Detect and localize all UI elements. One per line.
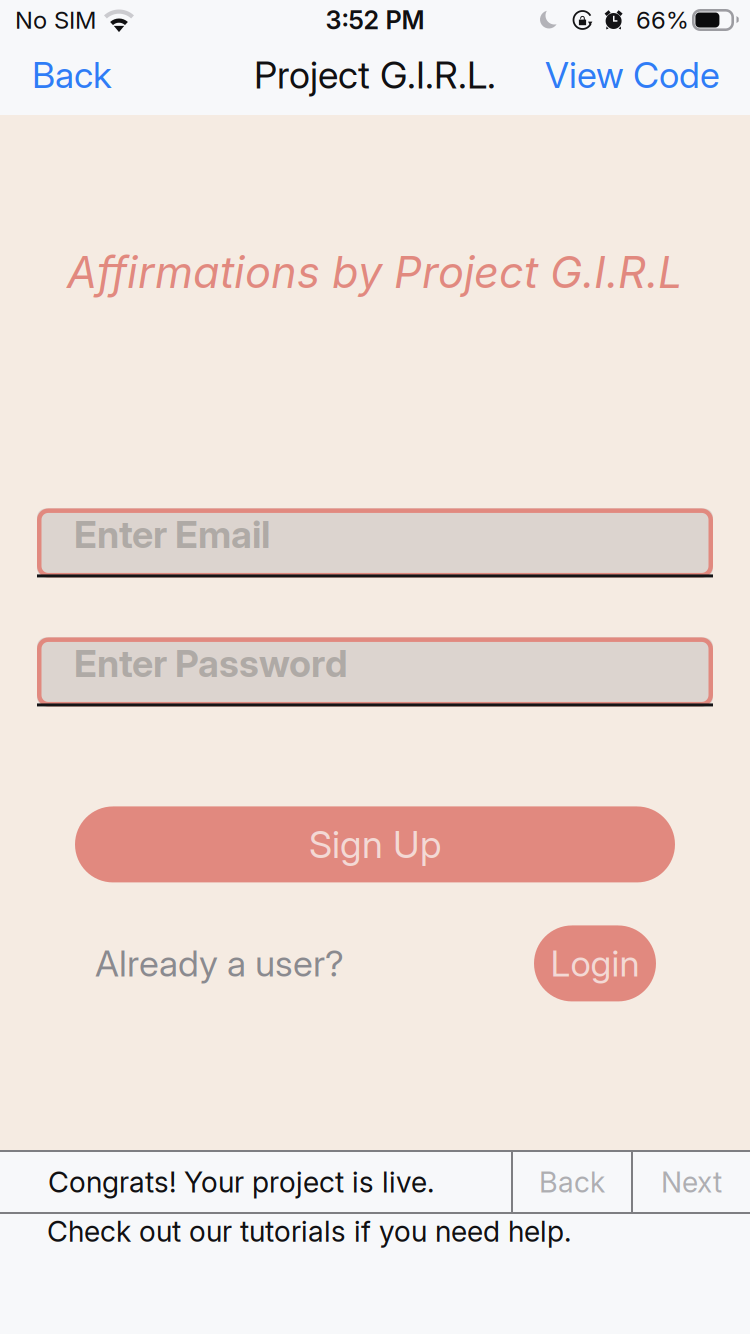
staticText: Next <box>661 1165 722 1199</box>
button[interactable]: Login <box>534 925 656 1001</box>
staticText: Sign Up <box>309 822 441 867</box>
button[interactable]: Back <box>513 1152 631 1212</box>
staticText: Enter Password <box>74 641 348 686</box>
staticText: Back <box>539 1165 605 1199</box>
staticText: Already a user? <box>95 942 344 985</box>
staticText: Affirmations by Project G.I.R.L <box>67 246 683 298</box>
staticText: 3:52 PM <box>325 5 424 35</box>
staticText: Check out our tutorials if you need help… <box>47 1214 571 1249</box>
staticText: No SIM <box>15 5 96 34</box>
staticText: View Code <box>545 53 720 97</box>
button[interactable]: Back <box>32 53 112 97</box>
staticText: Login <box>550 942 639 985</box>
button[interactable]: Next <box>633 1152 750 1212</box>
button[interactable]: Sign Up <box>75 806 675 882</box>
button[interactable]: View Code <box>545 53 720 97</box>
staticText: Congrats! Your project is live. <box>48 1165 434 1199</box>
staticText: 66% <box>636 5 689 34</box>
staticText: Back <box>32 53 112 97</box>
staticText: Project G.I.R.L. <box>254 52 496 98</box>
staticText: Enter Email <box>74 512 270 557</box>
